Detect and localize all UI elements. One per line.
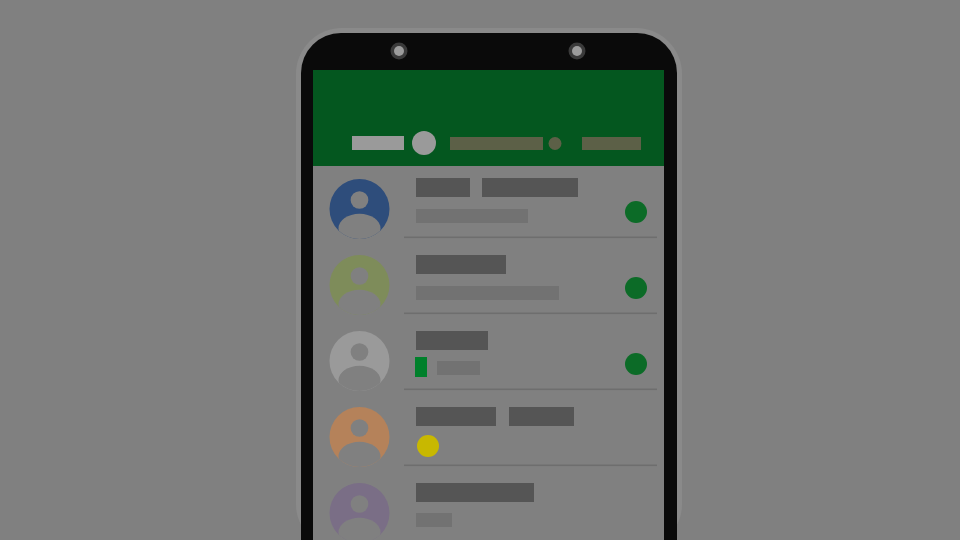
button[interactable]: Conversation 3	[313, 322, 664, 398]
button[interactable]: More options	[547, 130, 573, 156]
button[interactable]: Conversation 5	[313, 474, 664, 540]
button[interactable]: Navigate up	[346, 128, 410, 158]
button[interactable]: Conversation 2	[313, 246, 664, 322]
button[interactable]: Search	[446, 130, 547, 156]
button[interactable]: Action	[578, 130, 645, 156]
button[interactable]: Account	[410, 129, 438, 157]
button[interactable]: Conversation 4	[313, 398, 664, 474]
button[interactable]: Conversation 1	[313, 170, 664, 246]
